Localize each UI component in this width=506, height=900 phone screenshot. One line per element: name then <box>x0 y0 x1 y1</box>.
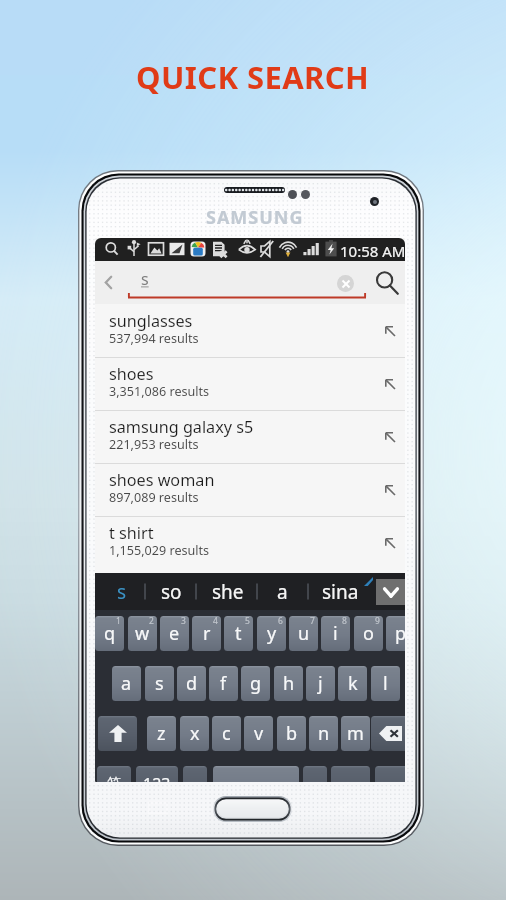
staticText: 5 <box>245 616 250 627</box>
staticText: i <box>333 621 338 646</box>
button[interactable]: i <box>321 616 350 651</box>
staticText: 7 <box>310 616 315 627</box>
button[interactable]: shoes <box>95 357 405 410</box>
staticText: a <box>121 671 132 696</box>
staticText: q <box>104 621 116 646</box>
staticText: a <box>277 579 288 605</box>
staticText: j <box>318 671 323 696</box>
button[interactable]: shoes woman <box>95 463 405 516</box>
staticText: r <box>203 621 211 646</box>
button[interactable]: Search <box>371 267 403 299</box>
button[interactable]: e <box>160 616 189 651</box>
staticText: she <box>212 579 244 605</box>
staticText: so <box>161 579 182 605</box>
staticText: l <box>383 671 388 696</box>
button[interactable]: z <box>147 716 176 751</box>
button[interactable]: she <box>202 573 254 610</box>
staticText: g <box>250 671 262 696</box>
staticText: n <box>318 721 330 746</box>
staticText: f <box>220 671 227 696</box>
staticText: 符 <box>107 775 121 782</box>
button[interactable]: r <box>192 616 221 651</box>
staticText: 2 <box>149 616 154 627</box>
other: Recent apps <box>149 802 167 814</box>
other: Back <box>335 802 353 814</box>
button[interactable]: m <box>341 716 370 751</box>
staticText: c <box>222 721 231 746</box>
staticText: 3,351,086 results <box>109 383 210 400</box>
button[interactable]: x <box>180 716 209 751</box>
button[interactable]: Search <box>375 766 405 782</box>
staticText: 537,994 results <box>109 330 199 347</box>
staticText: 8 <box>342 616 347 627</box>
staticText: 897,089 results <box>109 489 199 506</box>
staticText: QUICK SEARCH <box>136 56 370 98</box>
button[interactable]: b <box>277 716 306 751</box>
button[interactable]: Expand suggestions <box>376 579 405 605</box>
button[interactable]: Period <box>303 766 327 782</box>
button[interactable]: y <box>257 616 286 651</box>
button[interactable]: s <box>145 666 174 701</box>
button[interactable]: v <box>244 716 273 751</box>
staticText: 10:58 AM <box>340 241 405 261</box>
staticText: h <box>283 671 295 696</box>
button[interactable]: Shift <box>98 716 137 751</box>
staticText: s <box>117 579 127 605</box>
button[interactable]: Backspace <box>371 716 405 751</box>
staticText: m <box>347 721 364 746</box>
button[interactable]: u <box>289 616 318 651</box>
button[interactable]: so <box>145 573 197 610</box>
staticText: k <box>348 671 358 696</box>
button[interactable]: Emoji <box>183 766 207 782</box>
button[interactable]: samsung galaxy s5 <box>95 410 405 463</box>
staticText: s <box>141 268 149 290</box>
staticText: w <box>135 621 150 646</box>
button[interactable]: p <box>386 616 405 651</box>
button[interactable]: sina <box>314 573 366 610</box>
button[interactable]: w <box>128 616 157 651</box>
button[interactable]: h <box>274 666 303 701</box>
button[interactable]: Language <box>331 766 370 782</box>
button[interactable]: Numbers <box>136 766 178 782</box>
button[interactable]: Back <box>95 267 121 298</box>
staticText: d <box>186 671 198 696</box>
staticText: e <box>169 621 180 646</box>
button[interactable]: sunglasses <box>95 304 405 357</box>
staticText: 3 <box>181 616 186 627</box>
button[interactable]: l <box>371 666 400 701</box>
staticText: p <box>395 621 405 646</box>
button[interactable]: Clear query <box>337 275 354 292</box>
button[interactable]: Home <box>213 796 292 822</box>
staticText: v <box>254 721 264 746</box>
button[interactable]: k <box>338 666 367 701</box>
staticText: samsung galaxy s5 <box>109 416 254 438</box>
staticText: sunglasses <box>109 310 193 332</box>
staticText: 221,953 results <box>109 436 199 453</box>
button[interactable]: o <box>354 616 383 651</box>
staticText: shoes woman <box>109 469 215 491</box>
button[interactable]: t shirt <box>95 516 405 569</box>
button[interactable]: g <box>241 666 270 701</box>
staticText: 123 <box>143 773 171 782</box>
button[interactable]: n <box>309 716 338 751</box>
staticText: 9 <box>375 616 380 627</box>
staticText: SAMSUNG <box>206 205 304 230</box>
button[interactable]: t <box>224 616 253 651</box>
staticText: o <box>363 621 374 646</box>
staticText: b <box>286 721 298 746</box>
button[interactable]: j <box>306 666 335 701</box>
button[interactable]: a <box>112 666 141 701</box>
button[interactable]: c <box>212 716 241 751</box>
button[interactable]: q <box>95 616 124 651</box>
button[interactable]: f <box>209 666 238 701</box>
button[interactable]: a <box>256 573 308 610</box>
staticText: y <box>267 621 277 646</box>
button[interactable]: Space <box>213 766 299 782</box>
staticText: u <box>298 621 310 646</box>
button[interactable]: s <box>96 573 148 610</box>
button[interactable]: d <box>177 666 206 701</box>
staticText: 4 <box>213 616 218 627</box>
staticText: z <box>157 721 166 746</box>
button[interactable]: Symbols <box>97 766 131 782</box>
